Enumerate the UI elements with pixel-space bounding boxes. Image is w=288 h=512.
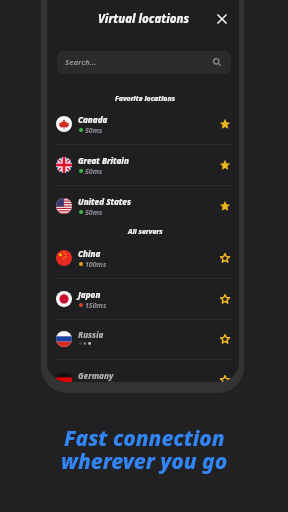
staticText: Germany: [78, 370, 114, 381]
staticText: 50ms: [85, 167, 103, 177]
staticText: 50ms: [85, 208, 103, 218]
button[interactable]: China: [47, 238, 239, 278]
staticText: China: [78, 248, 101, 259]
button[interactable]: Add favorite: [217, 331, 233, 347]
button[interactable]: Remove favorite: [217, 116, 233, 132]
button[interactable]: Add favorite: [217, 250, 233, 266]
button[interactable]: Germany: [47, 360, 239, 382]
staticText: All servers: [128, 227, 163, 236]
button[interactable]: Add favorite: [217, 291, 233, 307]
button[interactable]: Search...: [57, 51, 231, 74]
staticText: Fast connection: [64, 424, 225, 453]
button[interactable]: Close: [212, 9, 232, 29]
button[interactable]: Russia: [47, 319, 239, 359]
staticText: United States: [78, 196, 131, 207]
button[interactable]: Remove favorite: [217, 157, 233, 173]
button[interactable]: Canada: [47, 104, 239, 144]
staticText: wherever you go: [61, 447, 228, 476]
button[interactable]: Great Britain: [47, 145, 239, 185]
staticText: 150ms: [85, 301, 107, 311]
staticText: 50ms: [85, 126, 103, 136]
staticText: 100ms: [85, 260, 107, 270]
staticText: Virtual locations: [98, 11, 190, 27]
button[interactable]: Japon: [47, 279, 239, 319]
staticText: Russia: [78, 329, 104, 340]
button[interactable]: Remove favorite: [217, 198, 233, 214]
staticText: Canada: [78, 114, 108, 125]
staticText: Favorite locations: [115, 94, 175, 103]
staticText: Great Britain: [78, 155, 129, 166]
button[interactable]: United States: [47, 186, 239, 226]
staticText: Japon: [78, 289, 101, 300]
button[interactable]: Add favorite: [217, 372, 233, 382]
staticText: Search...: [65, 57, 97, 68]
